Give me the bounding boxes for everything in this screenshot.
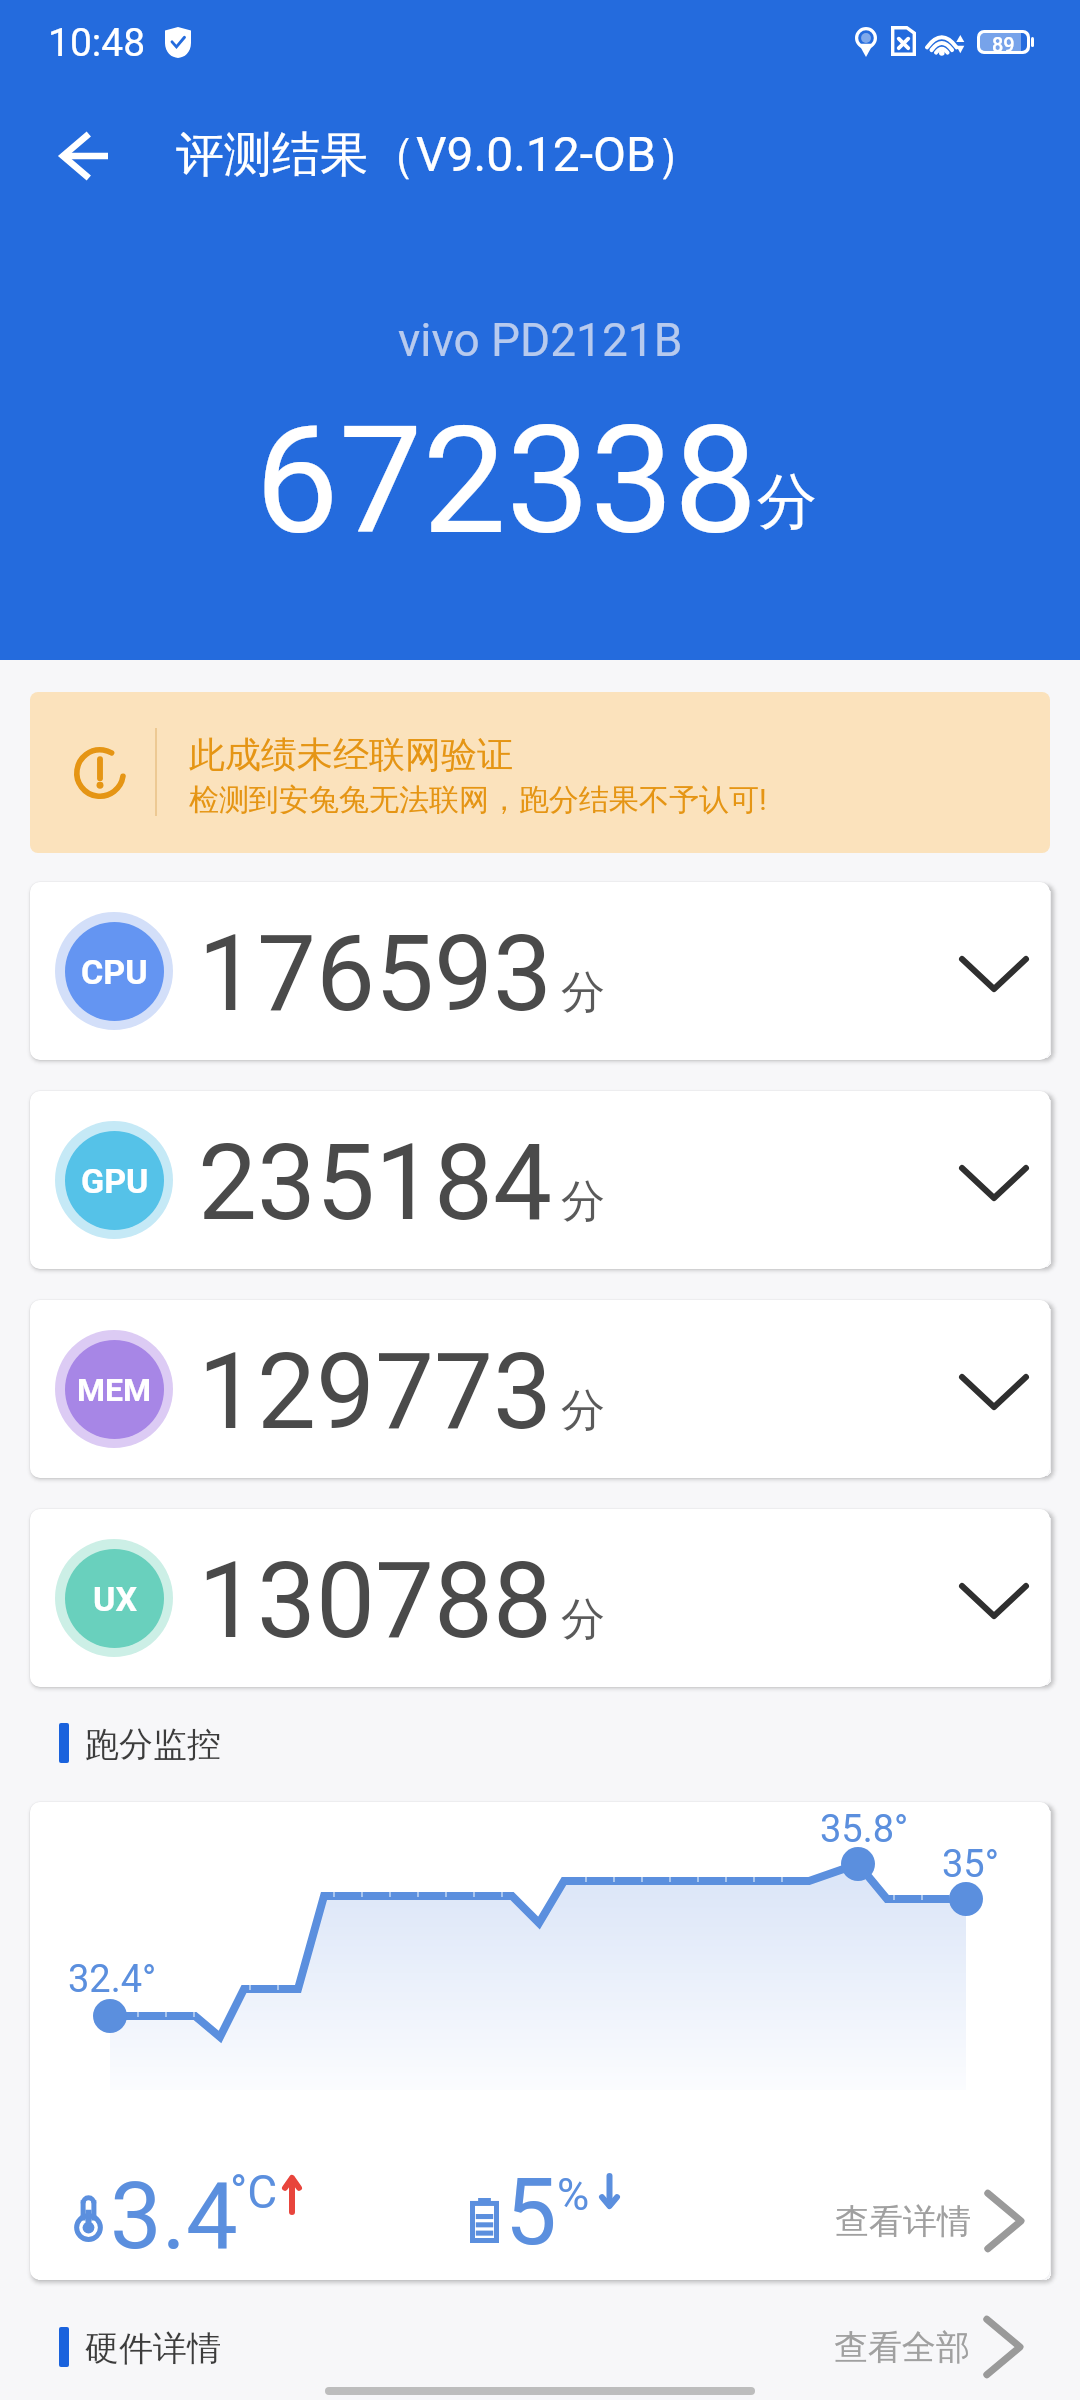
staticText: 分 [561,1174,605,1229]
staticText: MEM [77,1371,152,1409]
staticText: 分 [561,1592,605,1647]
staticText: CPU [81,952,148,992]
button[interactable]: GPU [30,1091,1050,1269]
staticText: 672338 [255,394,758,569]
button[interactable]: 查看全部 [800,2299,1022,2395]
staticText: 235184 [198,1122,553,1245]
button[interactable]: 此成绩未经联网验证 [30,692,1050,853]
button[interactable]: 查看详情 [830,2188,1023,2254]
staticText: GPU [81,1161,149,1201]
staticText: 此成绩未经联网验证 [189,732,513,777]
button[interactable]: MEM [30,1300,1050,1478]
staticText: 检测到安兔兔无法联网，跑分结果不予认可! [189,781,767,819]
staticText: 3.4 [110,2163,238,2271]
staticText: 35° [942,1842,999,1887]
staticText: 130788 [198,1540,553,1663]
staticText: UX [93,1579,137,1619]
button[interactable]: CPU [30,882,1050,1060]
staticText: °C [230,2165,278,2219]
staticText: 5 [505,2159,557,2267]
staticText: vivo PD2121B [398,313,683,367]
staticText: 查看详情 [835,2200,971,2243]
staticText: 10:48 [48,20,146,66]
staticText: % [557,2169,590,2221]
staticText: 分 [561,1383,605,1438]
staticText: 硬件详情 [85,2327,221,2370]
staticText: 跑分监控 [85,1723,221,1766]
staticText: 35.8° [820,1807,909,1852]
staticText: 分 [757,464,817,540]
button[interactable]: Back [24,96,144,216]
staticText: 129773 [198,1331,553,1454]
staticText: 32.4° [68,1957,157,2002]
staticText: 查看全部 [834,2326,970,2369]
staticText: 分 [561,965,605,1020]
button[interactable]: UX [30,1509,1050,1687]
staticText: 176593 [198,913,553,1036]
staticText: 评测结果（V9.0.12-OB） [176,125,704,185]
staticText: 89 [992,33,1015,51]
